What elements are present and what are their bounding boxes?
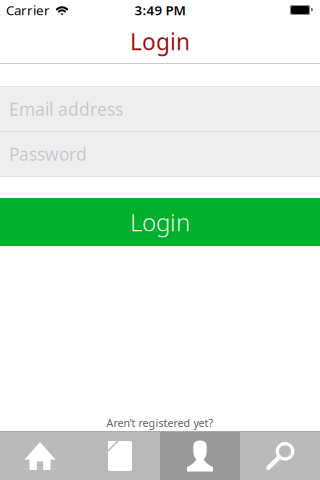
button[interactable]: Documents bbox=[80, 432, 160, 480]
button[interactable]: Home bbox=[0, 432, 80, 480]
staticText: Password bbox=[9, 142, 87, 165]
button[interactable]: Login bbox=[0, 198, 320, 246]
staticText: Carrier bbox=[6, 1, 50, 19]
staticText: Aren't registered yet? bbox=[106, 416, 213, 430]
staticText: Email address bbox=[9, 97, 123, 120]
button[interactable]: Profile bbox=[160, 432, 240, 480]
staticText: 3:49 PM bbox=[134, 1, 185, 19]
staticText: Login bbox=[130, 26, 190, 56]
button[interactable]: Password bbox=[0, 132, 320, 176]
staticText: Login bbox=[130, 206, 190, 238]
button[interactable]: Email address bbox=[0, 87, 320, 131]
button[interactable]: Search bbox=[240, 432, 320, 480]
button[interactable]: Aren't registered yet? bbox=[106, 416, 213, 431]
